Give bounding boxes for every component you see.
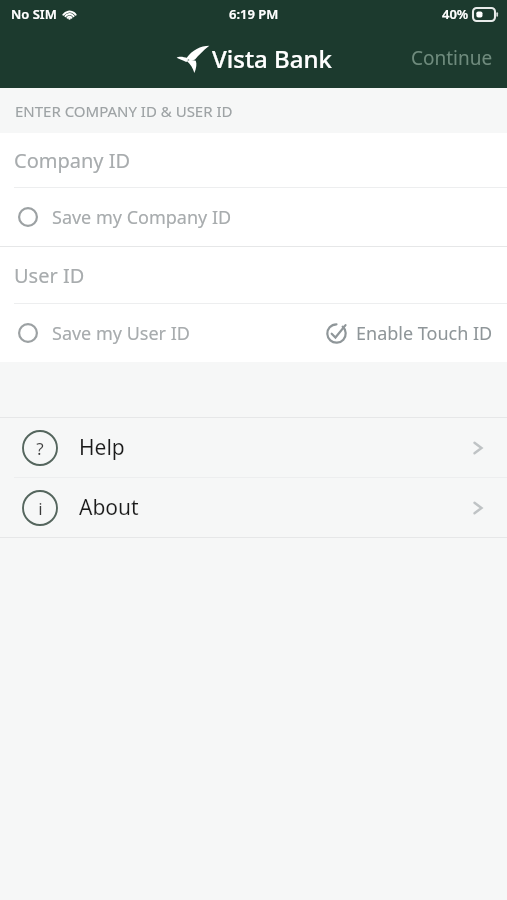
- staticText: Company ID: [14, 147, 131, 174]
- staticText: Enable Touch ID: [356, 321, 493, 346]
- button[interactable]: Save my Company ID: [0, 188, 507, 246]
- button[interactable]: i: [0, 478, 507, 537]
- staticText: 6:19 PM: [229, 5, 279, 23]
- staticText: ENTER COMPANY ID & USER ID: [15, 101, 233, 121]
- staticText: User ID: [14, 262, 85, 289]
- button[interactable]: User ID: [0, 247, 507, 303]
- staticText: 40%: [442, 5, 469, 23]
- button[interactable]: Save my User ID: [0, 304, 198, 362]
- other: Open: [467, 497, 489, 519]
- staticText: Save my Company ID: [52, 205, 232, 230]
- button[interactable]: Company ID: [0, 133, 507, 187]
- button[interactable]: Continue: [397, 35, 507, 81]
- staticText: ?: [36, 437, 44, 460]
- other: Open: [467, 437, 489, 459]
- button[interactable]: Enable Touch ID: [318, 304, 507, 362]
- button[interactable]: ?: [0, 418, 507, 477]
- staticText: Save my User ID: [52, 321, 190, 346]
- staticText: i: [38, 497, 43, 520]
- staticText: Continue: [411, 45, 493, 71]
- staticText: Vista Bank: [212, 42, 332, 75]
- staticText: About: [79, 493, 139, 522]
- staticText: No SIM: [11, 5, 57, 23]
- staticText: Help: [79, 433, 125, 462]
